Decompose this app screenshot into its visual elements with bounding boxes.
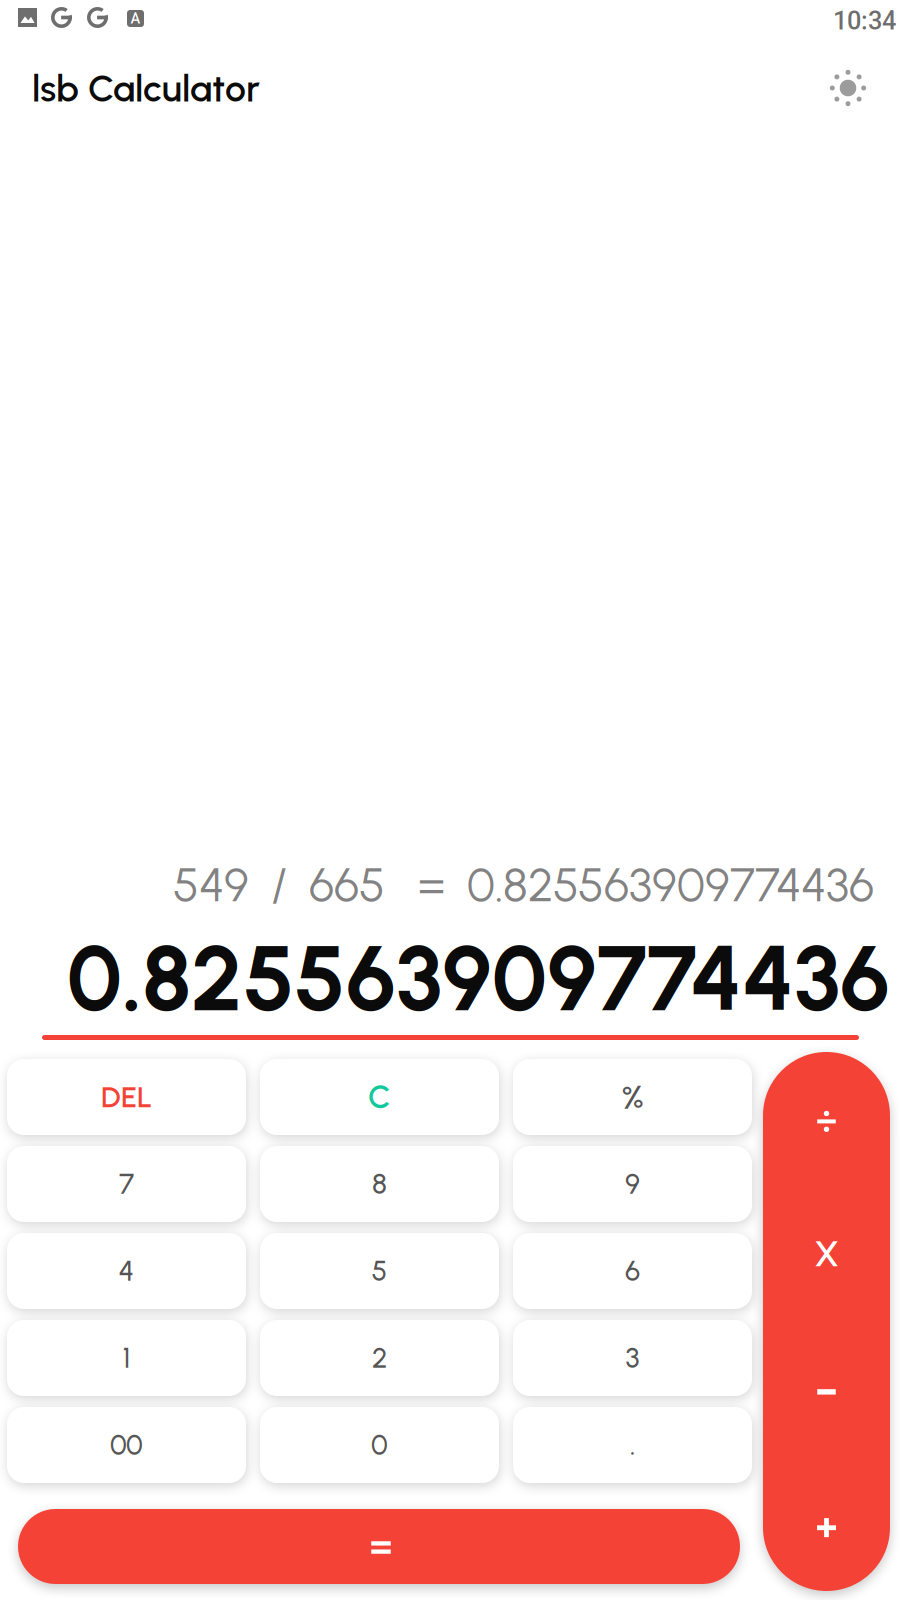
- button[interactable]: 9: [513, 1146, 752, 1222]
- staticText: X: [814, 1233, 838, 1275]
- button[interactable]: Plus: [763, 1456, 890, 1591]
- button[interactable]: 7: [7, 1146, 246, 1222]
- staticText: C: [368, 1078, 391, 1116]
- staticText: 10:34: [833, 6, 896, 36]
- staticText: 6: [625, 1254, 640, 1288]
- staticText: 549 / 665 = 0.825563909774436: [173, 857, 874, 913]
- staticText: 4: [118, 1254, 134, 1288]
- button[interactable]: 3: [513, 1320, 752, 1396]
- button[interactable]: Multiply: [763, 1187, 890, 1322]
- staticText: 2: [372, 1341, 387, 1375]
- staticText: lsb Calculator: [32, 66, 260, 111]
- staticText: 0: [371, 1428, 388, 1462]
- staticText: 5: [371, 1254, 387, 1288]
- button[interactable]: 0: [260, 1407, 499, 1483]
- button[interactable]: Minus: [763, 1321, 890, 1456]
- button[interactable]: Divide: [763, 1052, 890, 1187]
- button[interactable]: 6: [513, 1233, 752, 1309]
- button[interactable]: Equals: [18, 1509, 740, 1584]
- staticText: 00: [110, 1428, 143, 1462]
- button[interactable]: Toggle brightness: [824, 64, 872, 112]
- staticText: 8: [372, 1167, 387, 1201]
- staticText: 9: [625, 1167, 640, 1201]
- staticText: .: [630, 1428, 635, 1462]
- button[interactable]: DEL: [7, 1059, 246, 1135]
- button[interactable]: 1: [7, 1320, 246, 1396]
- staticText: %: [621, 1077, 643, 1117]
- button[interactable]: 8: [260, 1146, 499, 1222]
- button[interactable]: 4: [7, 1233, 246, 1309]
- staticText: 7: [119, 1167, 134, 1201]
- staticText: DEL: [101, 1079, 152, 1115]
- button[interactable]: 2: [260, 1320, 499, 1396]
- button[interactable]: 00: [7, 1407, 246, 1483]
- staticText: A: [130, 10, 140, 27]
- staticText: 0.825563909774436: [67, 924, 890, 1033]
- staticText: 3: [625, 1341, 639, 1375]
- staticText: 1: [122, 1341, 130, 1375]
- button[interactable]: 5: [260, 1233, 499, 1309]
- button[interactable]: %: [513, 1059, 752, 1135]
- button[interactable]: C: [260, 1059, 499, 1135]
